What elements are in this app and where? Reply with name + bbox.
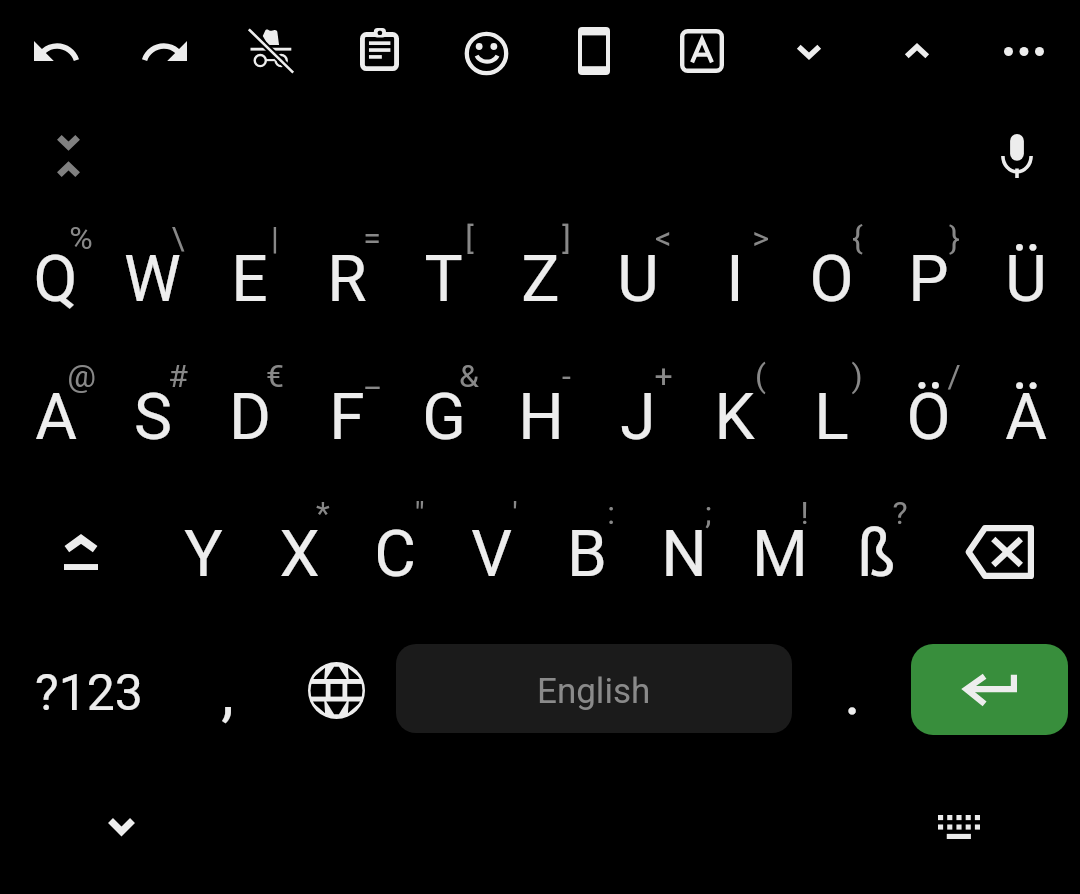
button[interactable]: Y [155, 489, 251, 619]
button[interactable]: Z [492, 214, 589, 344]
button[interactable]: J [589, 352, 686, 482]
staticText: : [607, 494, 615, 532]
button[interactable]: Undo [8, 3, 104, 99]
staticText: V [471, 517, 512, 592]
staticText: & [459, 357, 479, 395]
staticText: € [266, 357, 284, 395]
staticText: ß [857, 517, 896, 592]
button[interactable]: G [395, 352, 492, 482]
staticText: < [655, 219, 672, 257]
button[interactable]: L [783, 352, 880, 482]
button[interactable]: Hide keyboard [73, 778, 169, 874]
staticText: ] [562, 219, 571, 257]
button[interactable]: S [104, 352, 201, 482]
staticText: L [814, 380, 849, 455]
staticText: English [537, 671, 651, 712]
staticText: ) [851, 357, 863, 395]
button[interactable]: Clipboard [331, 1, 427, 97]
button[interactable]: D [201, 352, 298, 482]
button[interactable]: Page up [869, 3, 965, 99]
button[interactable]: W [104, 214, 201, 344]
button[interactable]: C [347, 489, 443, 619]
staticText: O [809, 242, 854, 317]
button[interactable]: N [636, 489, 732, 619]
button[interactable]: Change keyboard [911, 779, 1007, 875]
button[interactable]: More options [976, 3, 1072, 99]
staticText: Q [33, 242, 78, 317]
button[interactable]: English [396, 644, 792, 733]
staticText: \ [171, 219, 185, 257]
staticText: Ä [1005, 380, 1047, 455]
button[interactable]: R [298, 214, 395, 344]
staticText: Y [184, 517, 223, 592]
button[interactable]: X [251, 489, 347, 619]
staticText: @ [67, 357, 96, 395]
button[interactable]: . [807, 637, 897, 747]
staticText: D [229, 380, 271, 455]
staticText: U [617, 242, 659, 317]
staticText: . [844, 655, 861, 730]
staticText: N [661, 517, 707, 592]
staticText: > [752, 219, 769, 257]
button[interactable]: H [492, 352, 589, 482]
staticText: M [752, 517, 808, 592]
button[interactable]: A [7, 352, 104, 482]
button[interactable]: Shift [16, 497, 146, 607]
staticText: A [35, 380, 77, 455]
button[interactable]: Q [7, 214, 104, 344]
button[interactable]: Incognito mode off [223, 3, 319, 99]
staticText: - [562, 357, 571, 395]
button[interactable]: U [589, 214, 686, 344]
button[interactable]: K [686, 352, 783, 482]
button[interactable]: Ö [880, 352, 977, 482]
button[interactable]: V [443, 489, 539, 619]
staticText: R [327, 242, 367, 317]
button[interactable]: B [539, 489, 635, 619]
button[interactable]: Ä [977, 352, 1074, 482]
button[interactable]: I [686, 214, 783, 344]
staticText: G [422, 380, 466, 455]
button[interactable]: E [201, 214, 298, 344]
button[interactable]: T [395, 214, 492, 344]
button[interactable]: One handed mode [546, 3, 642, 99]
staticText: / [947, 357, 961, 395]
staticText: } [949, 219, 960, 257]
staticText: S [134, 380, 172, 455]
button[interactable]: Ü [977, 214, 1074, 344]
staticText: ( [755, 357, 766, 395]
button[interactable]: Backspace [934, 497, 1064, 607]
staticText: P [908, 242, 949, 317]
staticText: I [726, 242, 744, 317]
button[interactable]: Emoji [438, 5, 534, 101]
staticText: X [279, 517, 320, 592]
button[interactable]: P [880, 214, 977, 344]
staticText: ' [512, 494, 518, 532]
button[interactable]: Text editing [654, 3, 750, 99]
button[interactable]: Page down [761, 3, 857, 99]
button[interactable]: ?123 [14, 638, 164, 748]
staticText: T [424, 242, 463, 317]
staticText: ?123 [35, 664, 143, 723]
button[interactable]: Expand suggestions [20, 108, 116, 204]
button[interactable]: M [732, 489, 828, 619]
staticText: H [518, 380, 564, 455]
button[interactable]: Voice input [969, 108, 1065, 204]
button[interactable]: Redo [116, 3, 212, 99]
button[interactable]: Switch language [288, 635, 384, 745]
button[interactable]: O [783, 214, 880, 344]
staticText: Ü [1005, 242, 1047, 317]
button[interactable]: ß [828, 489, 924, 619]
staticText: + [654, 357, 673, 395]
staticText: , [221, 655, 234, 730]
staticText: { [852, 219, 863, 257]
staticText: * [316, 494, 330, 532]
staticText: ? [892, 494, 908, 532]
staticText: " [414, 494, 425, 532]
button[interactable]: Enter [911, 644, 1068, 735]
staticText: % [69, 219, 93, 257]
staticText: # [168, 357, 188, 395]
button[interactable]: F [298, 352, 395, 482]
button[interactable]: , [182, 637, 272, 747]
staticText: _ [365, 357, 380, 395]
staticText: B [567, 517, 607, 592]
